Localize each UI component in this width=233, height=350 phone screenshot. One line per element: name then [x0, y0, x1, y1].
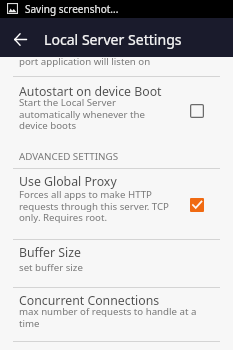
staticText: Forces all apps to make HTTP requests th… — [19, 188, 169, 223]
staticText: Autostart on device Boot — [19, 83, 162, 100]
button[interactable]: Concurrent Connections — [0, 288, 233, 341]
staticText: port application will listen on — [19, 55, 151, 68]
button[interactable]: Buffer Size — [0, 240, 233, 287]
staticText: set buffer size — [19, 261, 83, 274]
staticText: Local Server Settings — [44, 30, 182, 49]
button[interactable]: Use Global Proxy — [0, 169, 233, 239]
staticText: ADVANCED SETTINGS — [19, 150, 119, 163]
button[interactable]: Autostart on device Boot — [0, 77, 233, 168]
staticText: Buffer Size — [19, 244, 81, 261]
staticText: Saving screenshot... — [25, 2, 119, 16]
staticText: Concurrent Connections — [19, 292, 160, 309]
staticText: Start the Local Server automatically whe… — [19, 96, 145, 131]
staticText: max number of requests to handle at a ti… — [19, 305, 197, 329]
staticText: Use Global Proxy — [19, 173, 117, 190]
button[interactable]: Back — [0, 18, 41, 57]
